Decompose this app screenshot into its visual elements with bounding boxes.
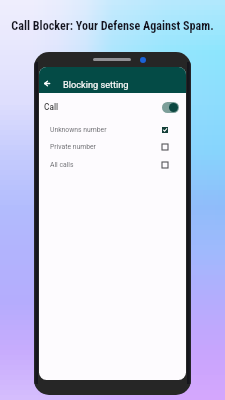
staticText: All calls	[50, 161, 74, 169]
staticText: Call	[44, 102, 59, 112]
staticText: Private number	[50, 143, 96, 151]
button[interactable]: Private number	[39, 138, 186, 156]
button[interactable]: Call	[39, 97, 186, 117]
staticText: Unknowns number	[50, 126, 107, 134]
staticText: Call Blocker: Your Defense Against Spam.	[11, 19, 214, 33]
button[interactable]: All calls	[39, 156, 186, 174]
button[interactable]: Back	[39, 74, 55, 92]
button[interactable]: Unknowns number	[39, 121, 186, 139]
staticText: Blocking setting	[63, 79, 129, 90]
